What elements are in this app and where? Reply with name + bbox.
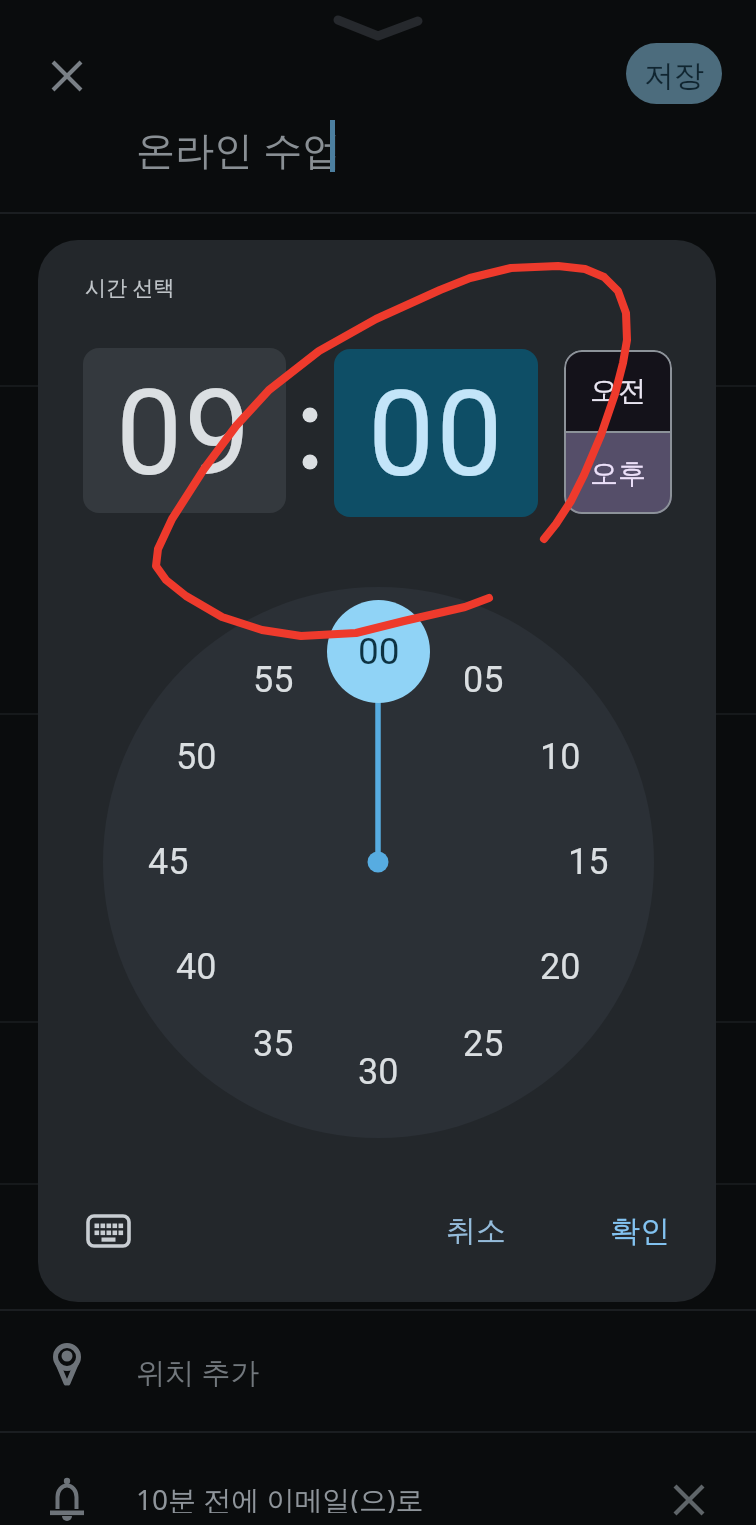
button[interactable] (76, 1201, 140, 1261)
staticText: 09 (116, 365, 253, 503)
button[interactable]: 00 (334, 349, 538, 517)
button[interactable]: 00 (327, 600, 430, 703)
button[interactable]: 저장 (626, 43, 722, 104)
button[interactable]: 온라인 수업 (0, 108, 756, 212)
button[interactable]: 오전 (564, 350, 672, 431)
staticText: 50 (176, 736, 217, 778)
button[interactable] (43, 52, 91, 100)
staticText: 30 (358, 1051, 399, 1093)
staticText: 취소 (446, 1212, 506, 1250)
staticText: 시간 선택 (85, 273, 175, 302)
staticText: 15 (568, 841, 609, 883)
staticText: 00 (358, 630, 400, 673)
staticText: 40 (176, 946, 217, 988)
staticText: 오후 (590, 456, 646, 491)
button[interactable]: 09 (83, 348, 286, 513)
button[interactable]: 10분 전에 이메일(으)로 (0, 1432, 756, 1525)
staticText: 55 (253, 659, 294, 701)
staticText: 위치 추가 (136, 1352, 260, 1392)
staticText: 10분 전에 이메일(으)로 (136, 1480, 424, 1513)
button[interactable]: 오후 (564, 433, 672, 514)
staticText: 온라인 수업 (136, 122, 342, 175)
button[interactable]: 취소 (416, 1201, 536, 1261)
staticText: 10 (540, 736, 581, 778)
staticText: 20 (540, 946, 581, 988)
staticText: 확인 (610, 1212, 670, 1250)
staticText: 오전 (590, 373, 646, 408)
button[interactable]: 확인 (580, 1201, 700, 1261)
staticText: 00 (368, 366, 505, 504)
staticText: 저장 (644, 57, 704, 95)
staticText: 35 (253, 1023, 294, 1065)
button[interactable]: 위치 추가 (0, 1311, 756, 1432)
staticText: 25 (463, 1023, 504, 1065)
staticText: 45 (148, 841, 189, 883)
staticText: 05 (463, 659, 504, 701)
